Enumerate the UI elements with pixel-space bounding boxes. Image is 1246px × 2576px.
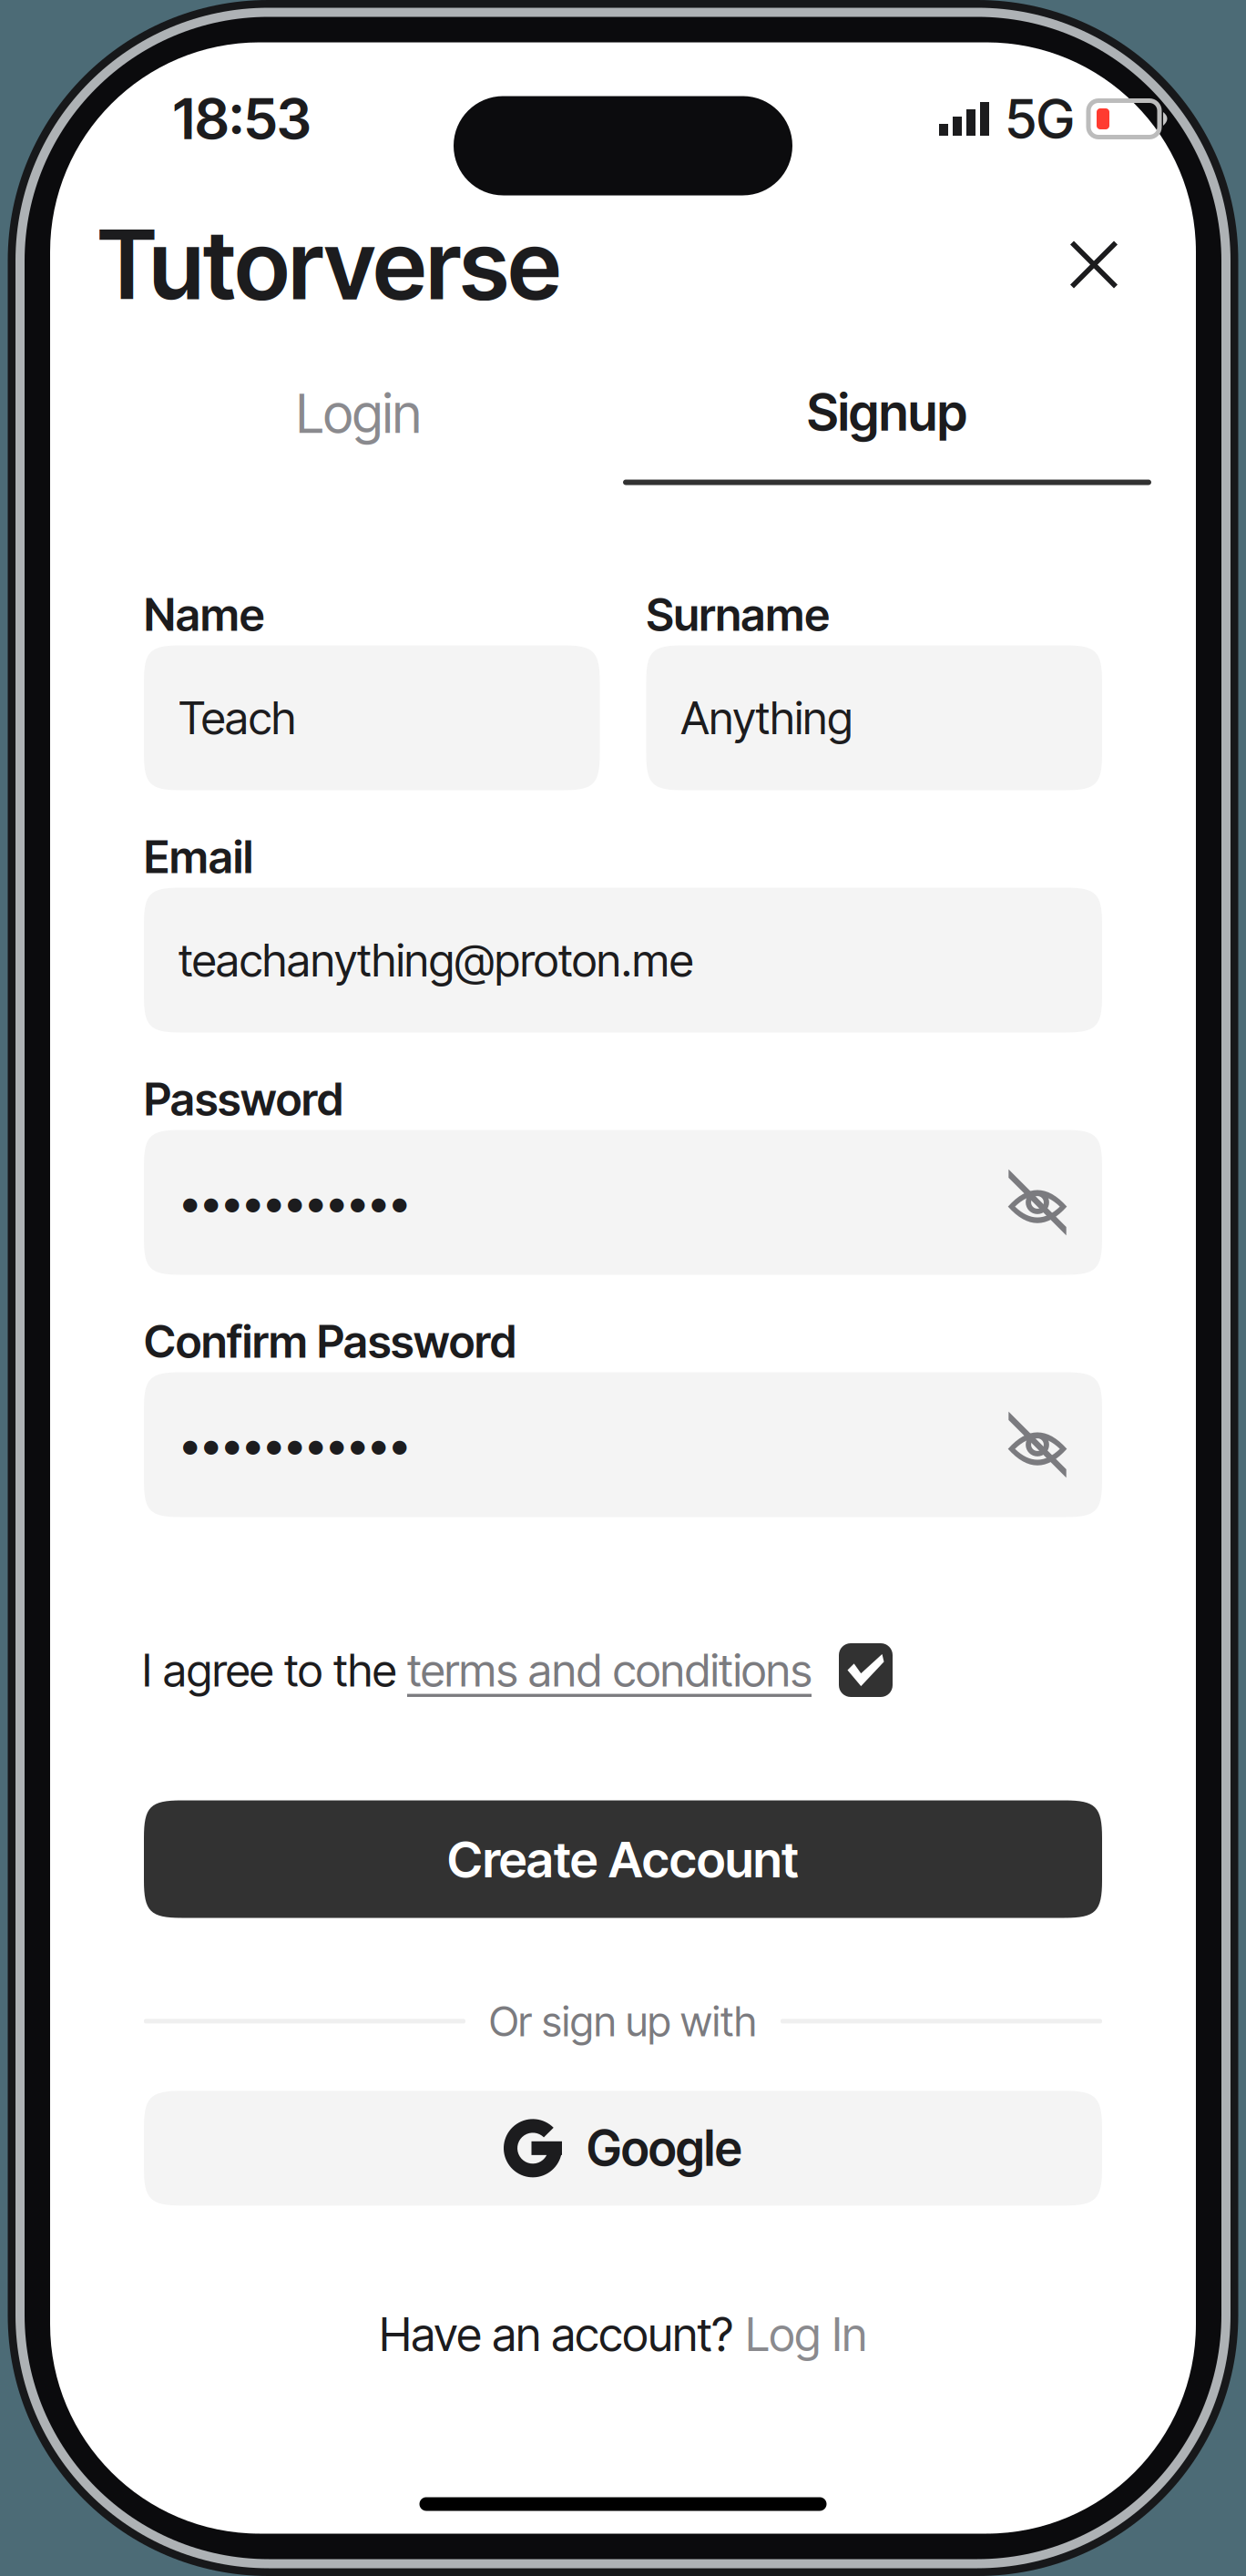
staticText: Or sign up with bbox=[489, 1996, 757, 2046]
staticText: Login bbox=[296, 381, 422, 446]
staticText: Teach bbox=[179, 691, 296, 745]
staticText: Email bbox=[144, 830, 253, 884]
button[interactable]: Have an account? bbox=[50, 2293, 1196, 2375]
staticText: Create Account bbox=[447, 1829, 799, 1889]
button[interactable]: Google bbox=[144, 2091, 1102, 2206]
staticText: ••••••••••• bbox=[179, 1418, 409, 1472]
staticText: Have an account? bbox=[379, 2306, 733, 2362]
button[interactable]: Close bbox=[1048, 219, 1139, 310]
staticText: Surname bbox=[646, 587, 829, 642]
staticText: terms and conditions bbox=[407, 1643, 812, 1697]
button[interactable]: I agree to the bbox=[50, 1626, 1196, 1714]
staticText: 18:53 bbox=[173, 85, 311, 153]
button[interactable]: Create Account bbox=[144, 1800, 1102, 1918]
staticText: teachanything@proton.me bbox=[179, 933, 693, 987]
staticText: ••••••••••• bbox=[179, 1175, 409, 1230]
staticText: I agree to the bbox=[142, 1643, 407, 1697]
staticText: Google bbox=[587, 2119, 742, 2178]
button[interactable]: Signup bbox=[623, 381, 1151, 485]
staticText: Password bbox=[144, 1072, 343, 1126]
staticText: Tutorverse bbox=[97, 207, 561, 322]
staticText: Signup bbox=[807, 381, 967, 443]
staticText: Name bbox=[144, 587, 264, 642]
staticText: Log In bbox=[746, 2306, 867, 2362]
staticText: 5G bbox=[1006, 87, 1074, 151]
staticText: Confirm Password bbox=[144, 1314, 516, 1369]
button[interactable]: Login bbox=[95, 381, 623, 485]
staticText: Anything bbox=[681, 691, 853, 745]
